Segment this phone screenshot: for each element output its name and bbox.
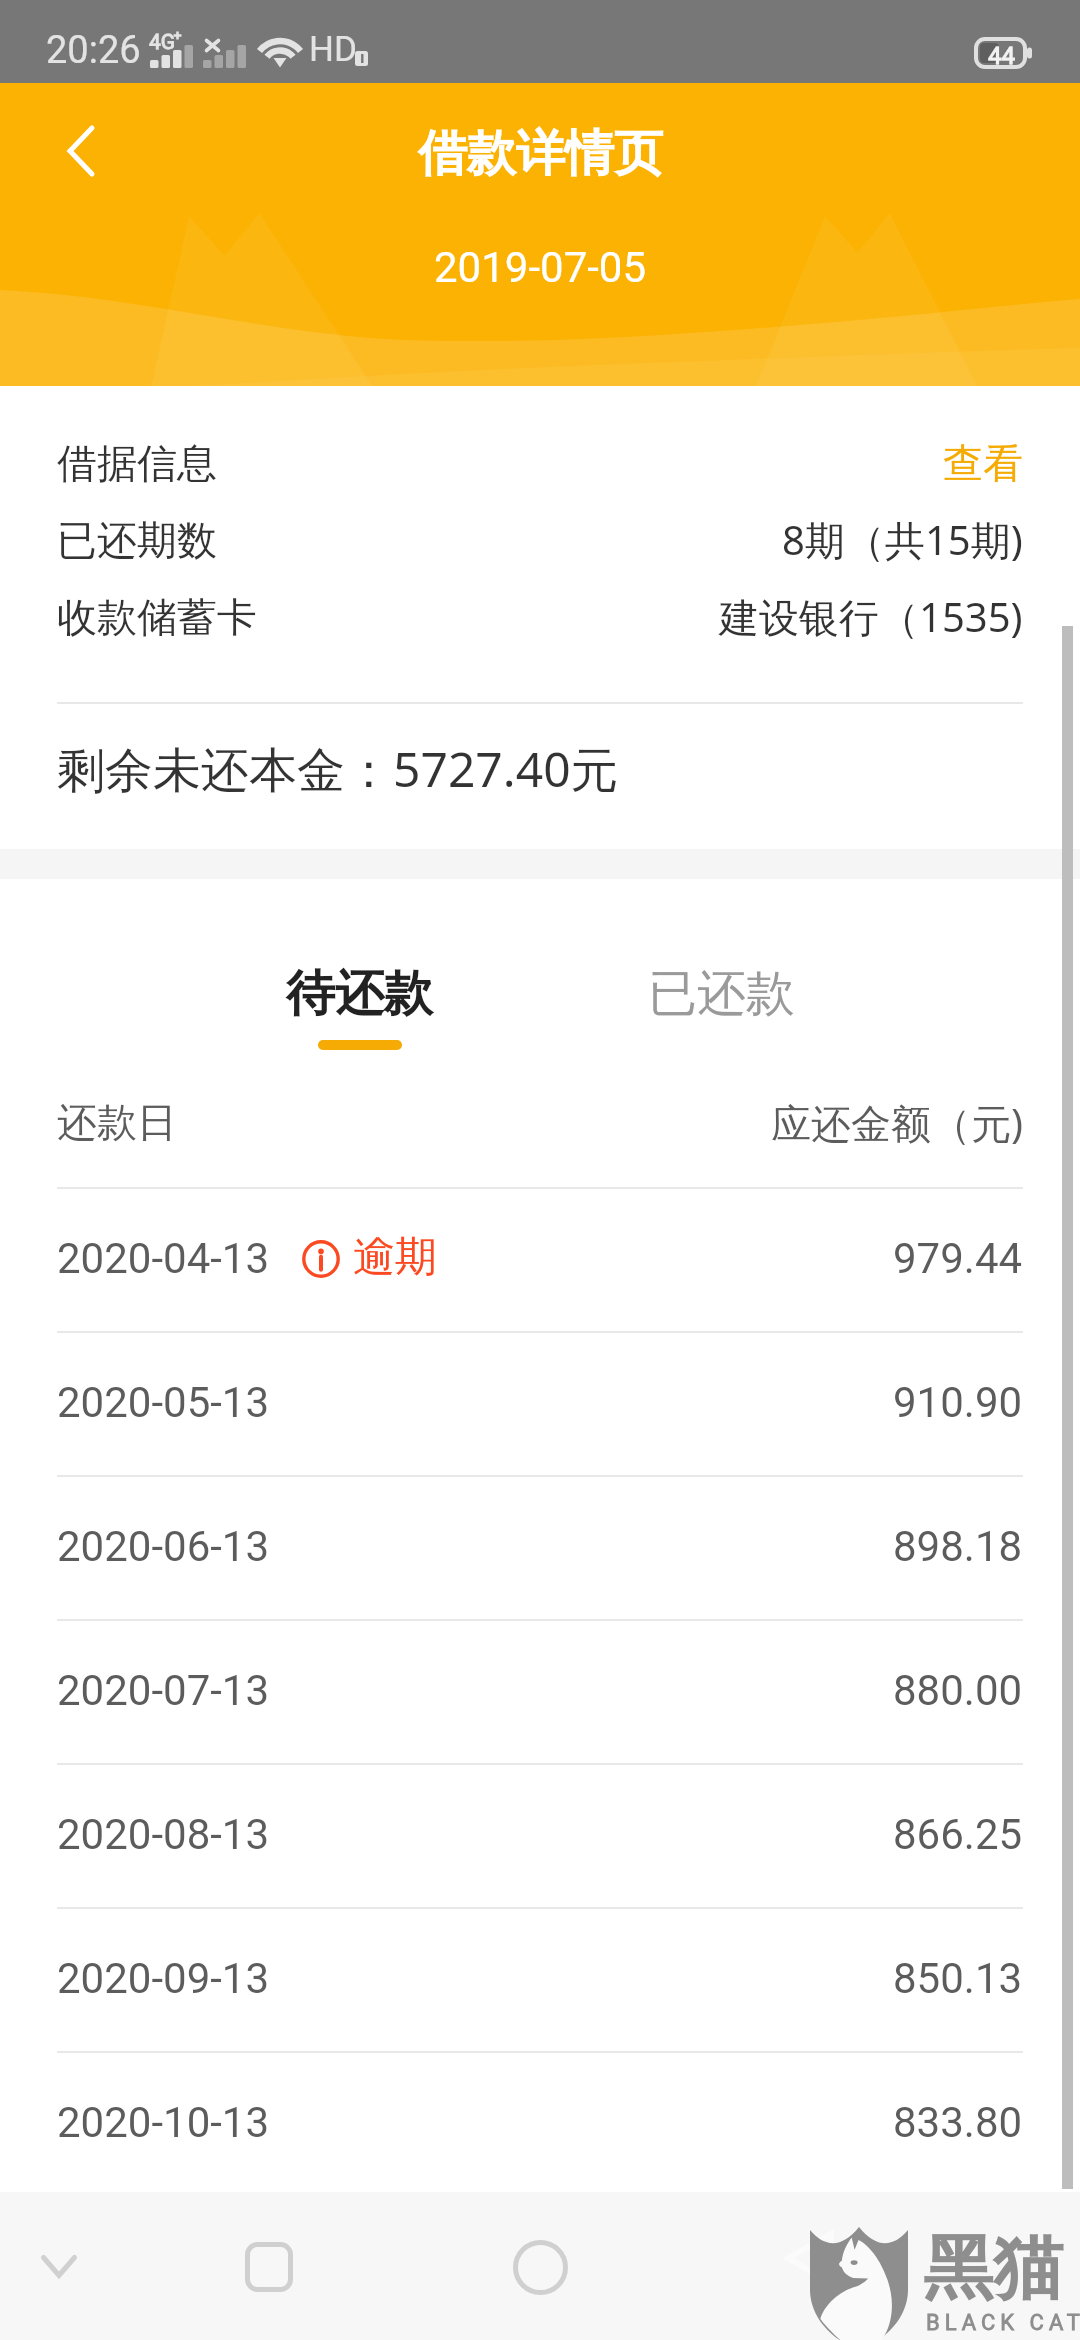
staticText: 850.13 [893, 1954, 1023, 2003]
staticText: 866.25 [893, 1810, 1023, 1859]
staticText: 2020-08-13 [57, 1810, 270, 1859]
button[interactable]: Home [492, 2219, 588, 2315]
staticText: 应还金额（元) [771, 1095, 1023, 1150]
staticText: 剩余未还本金：5727.40元 [57, 736, 619, 802]
staticText: 898.18 [893, 1522, 1023, 1571]
button[interactable]: 2020-06-13 [0, 1477, 1080, 1621]
staticText: 880.00 [893, 1666, 1023, 1715]
staticText: 2019-07-05 [434, 243, 647, 292]
staticText: 已还款 [648, 963, 795, 1025]
staticText: 建设银行（1535) [719, 589, 1023, 644]
button[interactable]: 已还款 [601, 963, 841, 1088]
button[interactable]: 2020-07-13 [0, 1621, 1080, 1765]
button[interactable]: 2020-04-13 [0, 1189, 1080, 1333]
staticText: 2020-04-13 [57, 1234, 270, 1283]
staticText: 910.90 [893, 1378, 1023, 1427]
staticText: 收款储蓄卡 [57, 592, 257, 642]
button[interactable]: 2020-08-13 [0, 1765, 1080, 1909]
button[interactable]: Hide keyboard [11, 2218, 107, 2314]
staticText: 2020-06-13 [57, 1522, 270, 1571]
button[interactable]: 待还款 [239, 963, 479, 1088]
staticText: 979.44 [893, 1234, 1023, 1283]
staticText: HD [309, 29, 357, 70]
staticText: 已还期数 [57, 515, 217, 565]
staticText: 还款日 [57, 1097, 177, 1147]
staticText: 8期（共15期) [782, 512, 1023, 567]
staticText: 逾期 [353, 1231, 437, 1284]
button[interactable]: 查看 [943, 438, 1023, 488]
staticText: 黑猫 [923, 2225, 1063, 2313]
staticText: 2020-05-13 [57, 1378, 270, 1427]
staticText: 借据信息 [57, 438, 217, 488]
staticText: 2020-07-13 [57, 1666, 270, 1715]
button[interactable]: Recent apps [221, 2219, 317, 2315]
staticText: 待还款 [286, 963, 433, 1025]
staticText: 4G [149, 30, 176, 55]
staticText: 44 [988, 42, 1015, 70]
staticText: 查看 [943, 438, 1023, 488]
button[interactable]: 2020-09-13 [0, 1909, 1080, 2053]
staticText: 2020-10-13 [57, 2098, 270, 2147]
button[interactable]: 2020-05-13 [0, 1333, 1080, 1477]
staticText: 833.80 [893, 2098, 1023, 2147]
staticText: 2020-09-13 [57, 1954, 270, 2003]
staticText: 20:26 [46, 28, 141, 73]
button[interactable]: 2020-10-13 [0, 2053, 1080, 2197]
button[interactable]: Back [33, 103, 129, 199]
staticText: 借款详情页 [418, 123, 663, 185]
staticText: BLACK CAT [926, 2310, 1080, 2336]
